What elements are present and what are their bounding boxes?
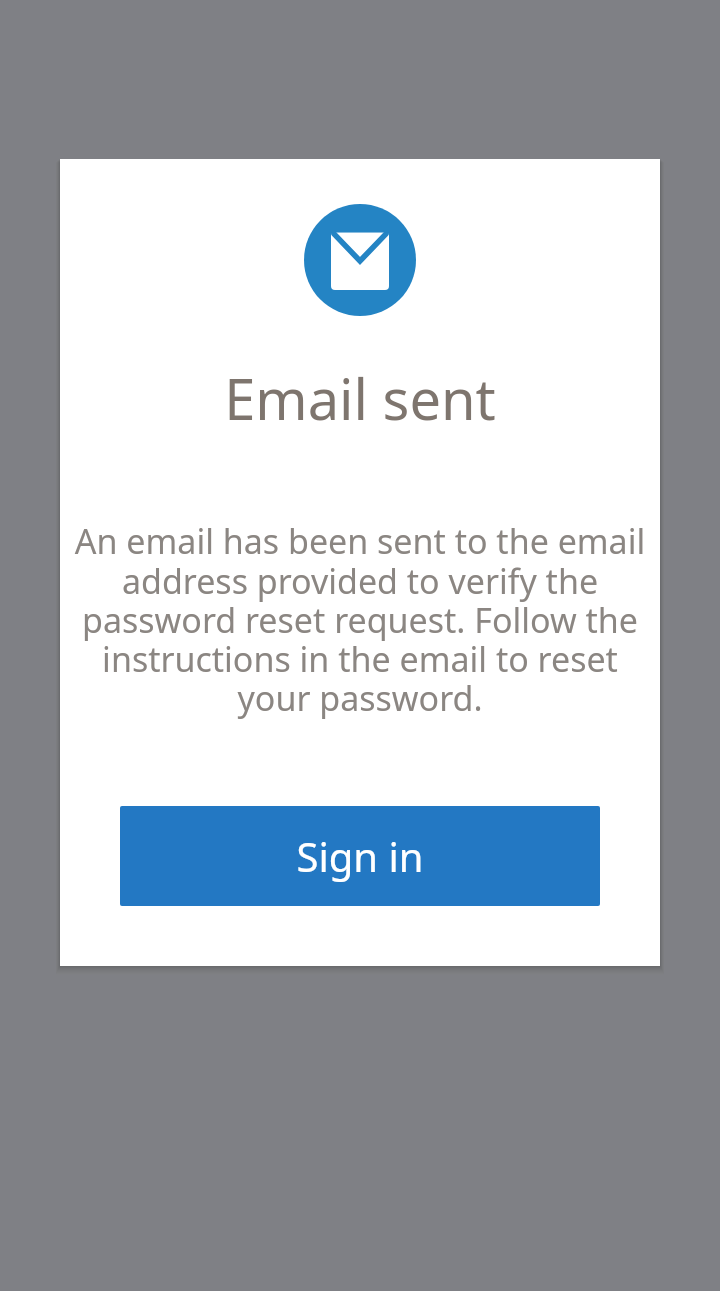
staticText: Email sent [224, 360, 496, 436]
staticText: An email has been sent to the email addr… [72, 518, 648, 721]
button[interactable]: Sign in [120, 806, 600, 906]
staticText: Sign in [296, 829, 424, 883]
other: Email sent [304, 204, 416, 316]
